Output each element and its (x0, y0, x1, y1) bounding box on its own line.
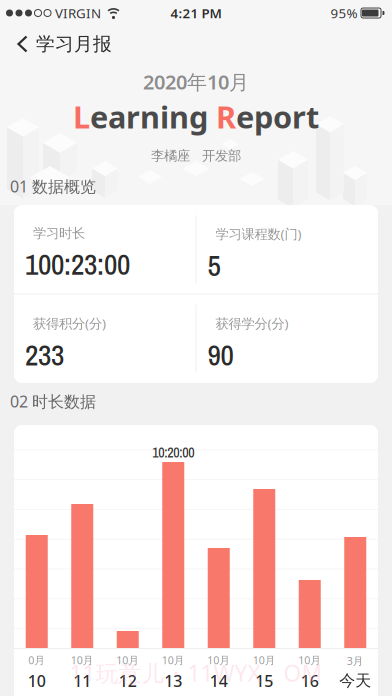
staticText: 100:23:00 (25, 244, 130, 284)
staticText: 02 时长数据 (10, 391, 96, 412)
staticText: 学习月报 (36, 32, 112, 55)
staticText: 10月 (162, 653, 185, 667)
staticText: 14 (210, 670, 228, 691)
staticText: 获得积分(分) (33, 314, 106, 332)
staticText: 15 (255, 670, 273, 691)
staticText: 李橘座 (151, 148, 190, 164)
staticText: VIRGIN (55, 4, 101, 22)
staticText: 233 (25, 335, 64, 375)
staticText: 4:21 PM (170, 4, 221, 22)
staticText: 95% (330, 4, 357, 22)
staticText: 90 (207, 335, 233, 375)
staticText: earning (90, 96, 216, 137)
staticText: 开发部 (202, 148, 241, 164)
staticText: 今天 (339, 671, 371, 691)
staticText: 10月 (207, 653, 230, 667)
staticText: 12 (119, 670, 137, 691)
staticText: 10 (28, 670, 46, 691)
staticText: 01 数据概览 (10, 176, 96, 197)
staticText: 16 (301, 670, 319, 691)
staticText: 2020年10月 (143, 68, 249, 95)
staticText: 10月 (298, 653, 321, 667)
staticText: 13 (164, 670, 182, 691)
staticText: 10月 (116, 653, 139, 667)
staticText: 获得学分(分) (215, 314, 288, 332)
staticText: 3月 (347, 654, 364, 668)
staticText: 5 (207, 246, 220, 285)
staticText: 10月 (253, 653, 276, 667)
staticText: 11 (73, 670, 91, 691)
staticText: 0月 (28, 653, 45, 667)
staticText: L (73, 96, 90, 137)
button[interactable]: 学习月报 (17, 32, 112, 55)
staticText: R (216, 96, 236, 137)
staticText: 11玩意儿・11WYX．OM (69, 658, 322, 688)
staticText: 10:20:00 (152, 443, 194, 462)
staticText: 学习时长 (33, 225, 85, 241)
staticText: 学习课程数(门) (215, 225, 301, 243)
staticText: 10月 (71, 653, 94, 667)
staticText: eport (236, 96, 319, 137)
